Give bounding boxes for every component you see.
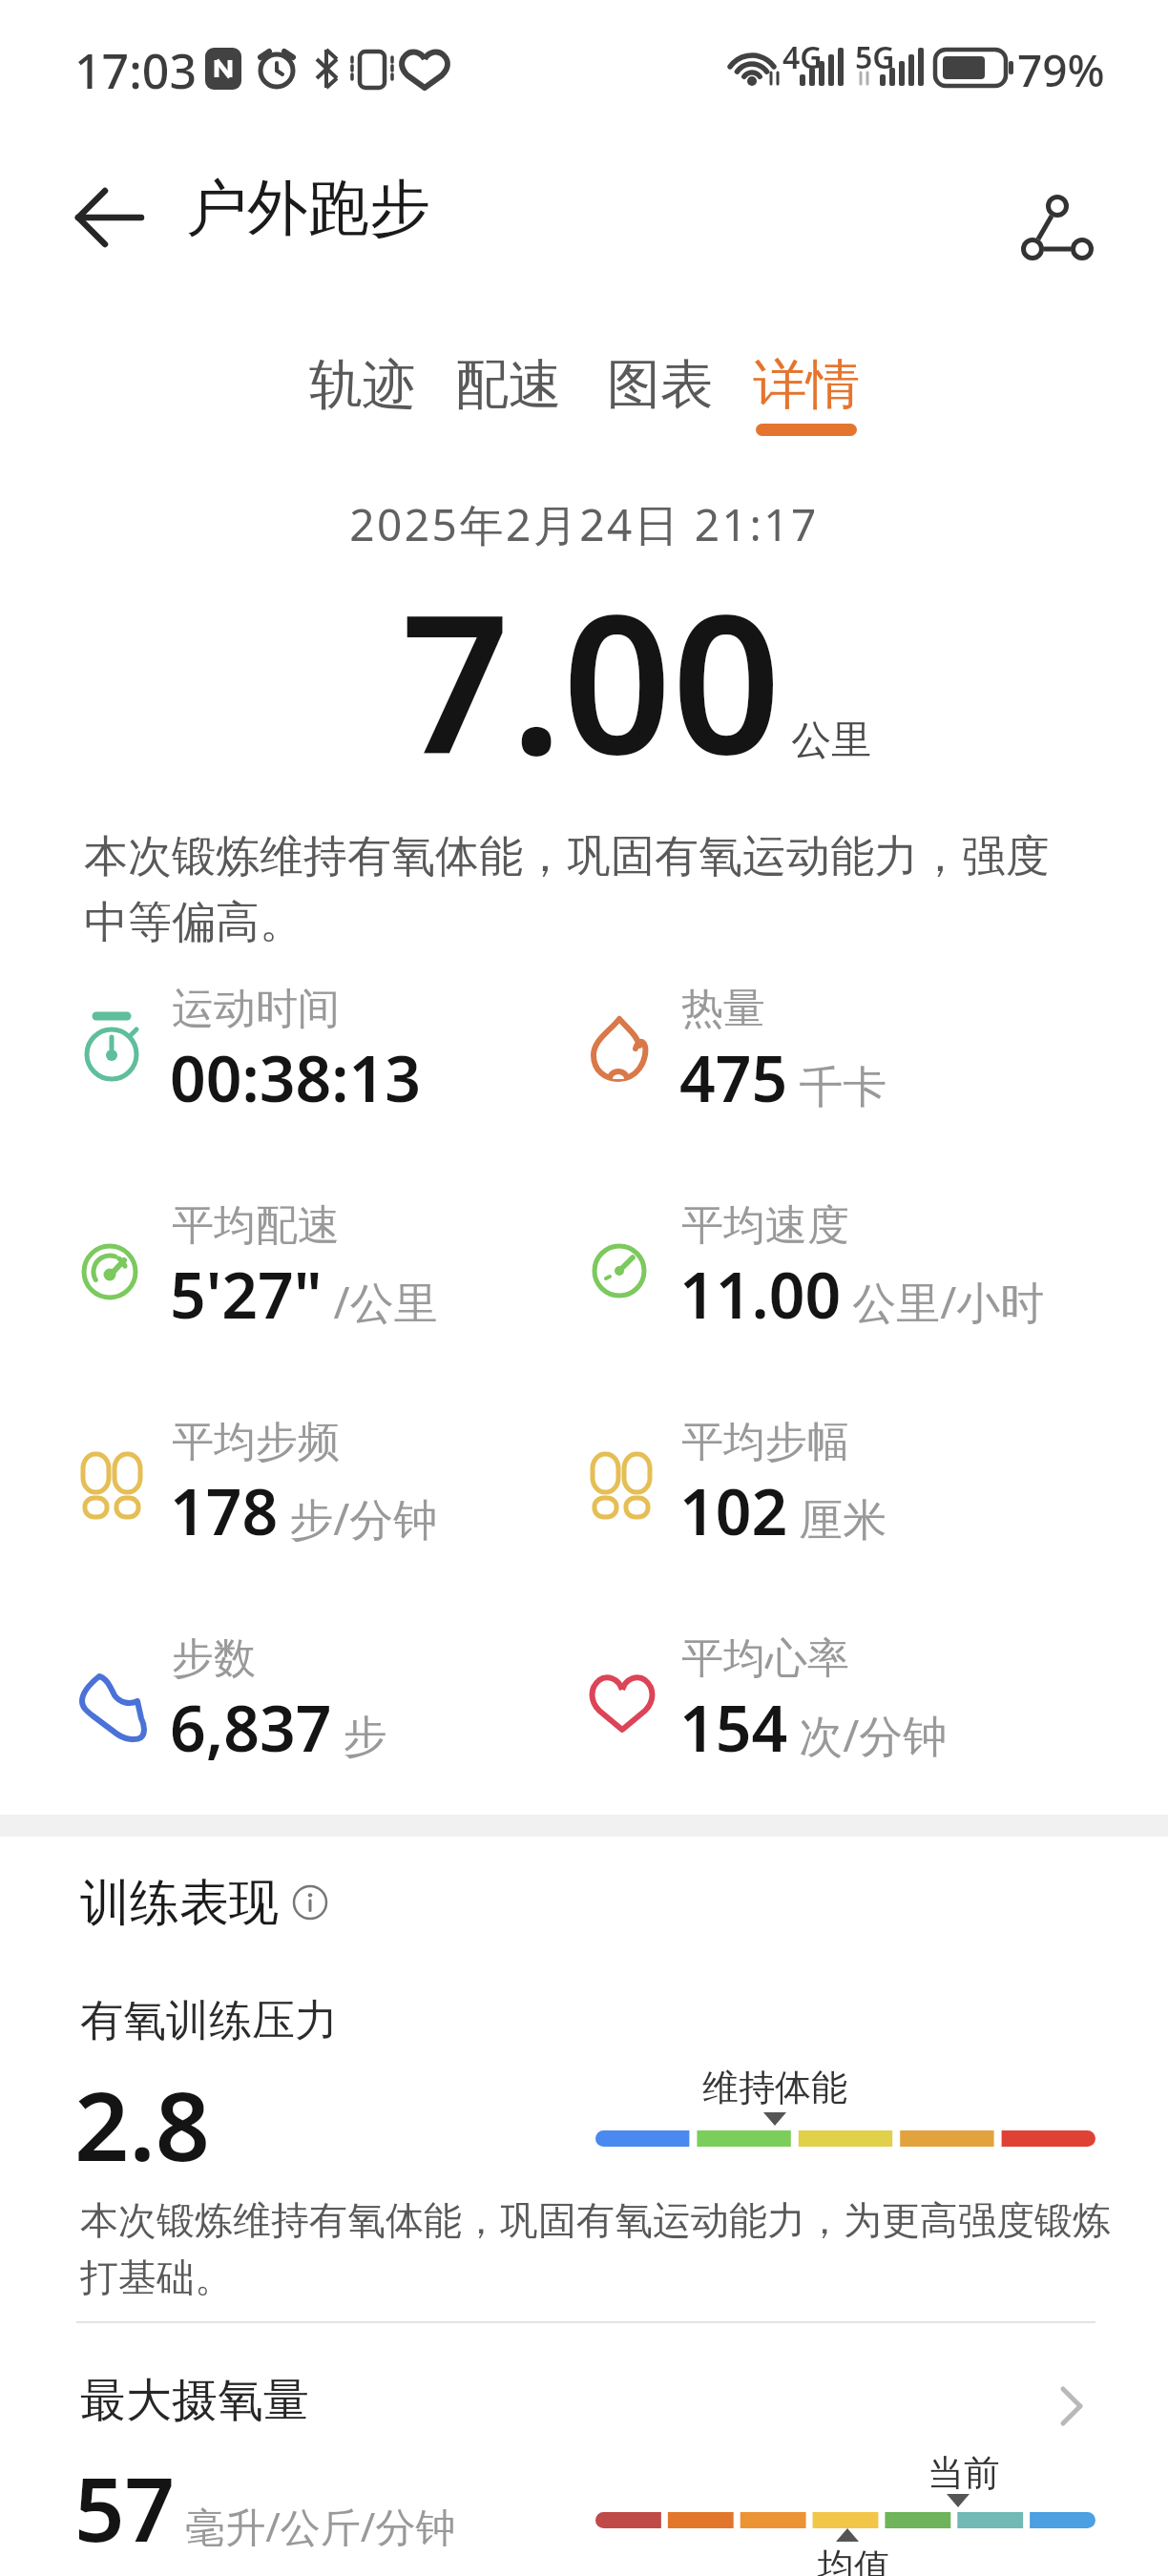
staticText: 102 厘米 [679, 1467, 887, 1553]
button[interactable]: 平均步幅 [586, 1416, 1092, 1588]
staticText: 475 千卡 [679, 1034, 887, 1120]
button[interactable]: 平均配速 [76, 1199, 582, 1371]
staticText: 最大摄氧量 [80, 2372, 309, 2429]
staticText: 7.00 公里 [401, 550, 872, 809]
staticText: 11.00 公里/小时 [679, 1251, 1045, 1337]
staticText: 详情 [753, 351, 860, 419]
staticText: 5G [855, 36, 895, 78]
staticText: 训练表现 [80, 1872, 279, 1935]
staticText: 00:38:13 [170, 1034, 421, 1120]
staticText: 运动时间 [172, 983, 340, 1035]
button[interactable]: 图表 [594, 351, 727, 439]
staticText: 平均步幅 [681, 1416, 849, 1468]
staticText: 6,837 步 [170, 1684, 387, 1770]
staticText: 图表 [607, 351, 714, 419]
button[interactable]: 平均步频 [76, 1416, 582, 1588]
staticText: 178 步/分钟 [170, 1467, 438, 1553]
staticText: 当前 [928, 2450, 1000, 2496]
staticText: 2.8 [74, 2059, 210, 2189]
staticText: 5'27" /公里 [170, 1251, 438, 1337]
staticText: 平均配速 [172, 1199, 340, 1252]
staticText: 配速 [455, 351, 562, 419]
staticText: 57 毫升/公斤/分钟 [74, 2448, 456, 2567]
button[interactable]: 平均速度 [586, 1199, 1092, 1371]
button[interactable]: 热量 [586, 983, 1092, 1154]
button[interactable]: 运动时间 [76, 983, 582, 1154]
staticText: 维持体能 [702, 2065, 847, 2110]
staticText: 本次锻炼维持有氧体能，巩固有氧运动能力，强度 中等偏高。 [84, 829, 1050, 949]
staticText: 本次锻炼维持有氧体能，巩固有氧运动能力，为更高强度锻炼 打基础。 [80, 2196, 1111, 2302]
staticText: 有氧训练压力 [80, 1994, 338, 2048]
staticText: 154 次/分钟 [679, 1684, 948, 1770]
staticText: 17:03 [74, 38, 197, 103]
button[interactable]: 轨迹 [296, 351, 429, 439]
button[interactable]: 步数 [76, 1632, 582, 1804]
button[interactable]: 平均心率 [586, 1632, 1092, 1804]
staticText: 79% [1017, 40, 1105, 100]
staticText: 平均速度 [681, 1199, 849, 1252]
button[interactable] [59, 168, 158, 267]
staticText: 平均步频 [172, 1416, 340, 1468]
staticText: 步数 [172, 1632, 256, 1685]
button[interactable]: 最大摄氧量 [0, 2347, 1168, 2452]
button[interactable]: 详情 [740, 351, 873, 439]
button[interactable] [992, 156, 1111, 275]
button[interactable]: 配速 [442, 351, 575, 439]
staticText: 均值 [818, 2544, 890, 2576]
staticText: 平均心率 [681, 1632, 849, 1685]
staticText: 热量 [681, 983, 765, 1035]
staticText: 2025年2月24日 21:17 [0, 494, 1168, 554]
staticText: 户外跑步 [186, 170, 430, 247]
staticText: 4G [782, 36, 823, 78]
staticText: 轨迹 [309, 351, 416, 419]
